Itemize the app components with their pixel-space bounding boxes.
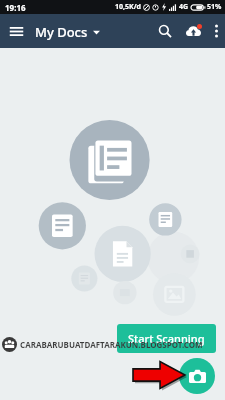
button[interactable]: Scan with camera (179, 358, 215, 394)
button[interactable]: Search (151, 17, 179, 45)
button[interactable]: Open navigation drawer (0, 16, 33, 47)
staticText: 19:16 (5, 2, 26, 13)
staticText: 10,5K/d (115, 2, 141, 12)
staticText: Start Scanning (128, 331, 205, 346)
staticText: CARABARUBUATDAFTARAKUN.BLOGSPOT.COM (20, 339, 203, 350)
button[interactable]: Upload to cloud (179, 18, 208, 44)
button[interactable]: My Docs (33, 17, 102, 47)
button[interactable]: Start Scanning (117, 324, 216, 353)
staticText: My Docs (35, 23, 88, 41)
staticText: 4G (179, 2, 189, 12)
staticText: 51% (207, 2, 222, 12)
button[interactable]: More options (208, 17, 225, 45)
